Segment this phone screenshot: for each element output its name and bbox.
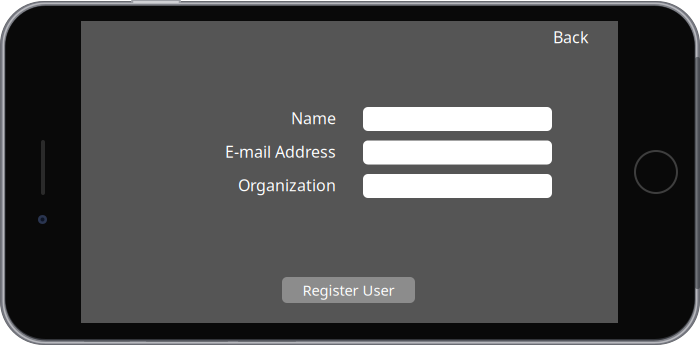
staticText: E-mail Address (225, 141, 336, 162)
button[interactable]: Register User (282, 277, 415, 303)
staticText: Register User (302, 280, 394, 300)
button[interactable]: E-mail Address (363, 140, 552, 164)
staticText: Name (291, 107, 336, 129)
button[interactable]: Name (363, 107, 552, 131)
button[interactable]: Back (535, 25, 589, 49)
staticText: Organization (238, 174, 336, 196)
staticText: Back (553, 26, 589, 48)
button[interactable]: Organization (363, 174, 552, 198)
